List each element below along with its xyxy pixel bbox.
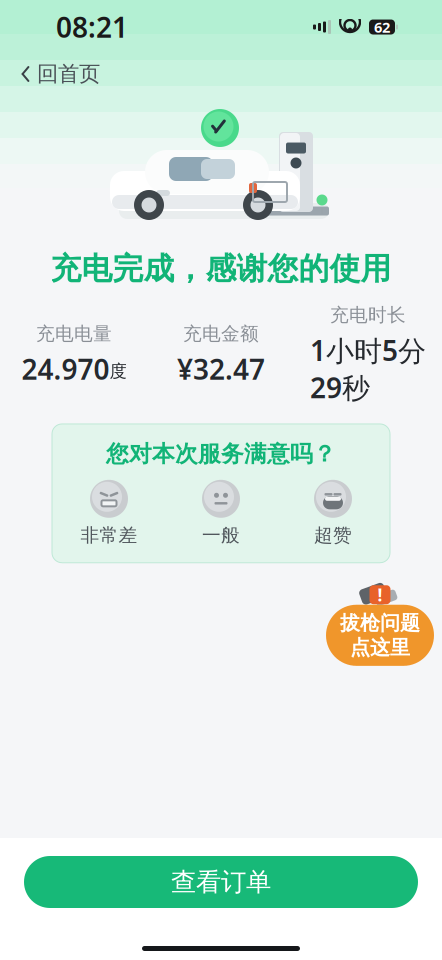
button[interactable]: 回首页 [0, 53, 114, 95]
staticText: 充电完成，感谢您的使用 [50, 250, 391, 288]
staticText: 非常差 [80, 524, 137, 547]
staticText: 08:21 [56, 8, 128, 46]
staticText: 62 [374, 17, 390, 37]
staticText: 拔枪问题 [340, 611, 420, 635]
staticText: 24.970 [21, 350, 109, 387]
button[interactable]: 超赞 [277, 478, 389, 549]
staticText: 充电金额 [183, 322, 259, 345]
staticText: 充电电量 [36, 322, 112, 345]
staticText: 充电时长 [330, 304, 406, 327]
button[interactable]: 拔枪问题点这里 [326, 577, 434, 666]
staticText: 回首页 [37, 61, 100, 87]
staticText: 1小时5分29秒 [310, 332, 426, 406]
staticText: 一般 [202, 524, 240, 547]
staticText: 超赞 [314, 524, 352, 547]
staticText: 点这里 [350, 635, 410, 660]
button[interactable]: 非常差 [53, 478, 165, 549]
staticText: 查看订单 [171, 866, 271, 897]
button[interactable]: 查看订单 [24, 856, 418, 908]
button[interactable]: 一般 [165, 478, 277, 549]
staticText: 度 [109, 361, 126, 382]
staticText: ¥32.47 [177, 350, 265, 387]
staticText: 您对本次服务满意吗？ [106, 440, 336, 468]
staticText: ! [377, 583, 382, 606]
